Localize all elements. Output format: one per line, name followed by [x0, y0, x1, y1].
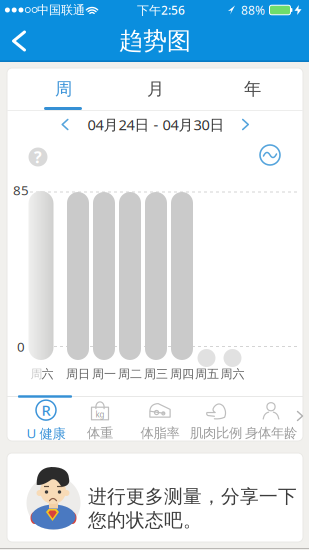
button[interactable]: 更多: [293, 401, 307, 431]
staticText: 月: [147, 78, 164, 100]
staticText: 85: [13, 181, 29, 199]
staticText: 体重: [87, 425, 113, 441]
staticText: 周六: [220, 367, 244, 381]
button[interactable]: 返回: [0, 20, 39, 62]
staticText: 04月24日 - 04月30日: [87, 115, 224, 134]
staticText: 周三: [144, 367, 168, 381]
staticText: 中国联通: [37, 3, 85, 17]
button[interactable]: 肌肉比例: [187, 399, 245, 443]
staticText: kg: [95, 409, 104, 420]
staticText: 身体年龄: [245, 425, 297, 441]
staticText: 周二: [118, 367, 142, 381]
staticText: U 健康: [26, 424, 65, 442]
staticText: ?: [34, 146, 42, 168]
button[interactable]: 上一周: [50, 109, 80, 139]
staticText: 体脂率: [140, 425, 179, 441]
button[interactable]: 体脂率: [133, 399, 187, 443]
staticText: 周: [30, 367, 42, 381]
staticText: 88%: [241, 2, 265, 18]
button[interactable]: 分享状态: [0, 0, 309, 550]
staticText: 六: [41, 367, 53, 381]
staticText: 周四: [170, 367, 194, 381]
button[interactable]: 年: [204, 69, 300, 109]
button[interactable]: 下一周: [230, 109, 260, 139]
staticText: 周日: [66, 367, 90, 381]
staticText: 周: [55, 78, 72, 100]
staticText: 肌肉比例: [190, 425, 242, 441]
staticText: 周一: [92, 367, 116, 381]
button[interactable]: R: [19, 399, 73, 443]
staticText: 0: [17, 338, 25, 355]
button[interactable]: kg: [75, 399, 125, 443]
button[interactable]: 身体年龄: [242, 399, 300, 443]
button[interactable]: 帮助: [24, 143, 52, 171]
button[interactable]: 周: [15, 69, 111, 109]
staticText: 下午2:56: [137, 2, 185, 18]
staticText: 年: [244, 78, 261, 100]
staticText: 周五: [195, 367, 219, 381]
staticText: R: [41, 400, 50, 420]
staticText: 趋势图: [119, 26, 191, 56]
staticText: 进行更多测量，分享一下: [88, 485, 297, 508]
button[interactable]: 曲线图: [256, 141, 284, 169]
staticText: 您的状态吧。: [88, 509, 202, 532]
button[interactable]: 月: [107, 69, 203, 109]
